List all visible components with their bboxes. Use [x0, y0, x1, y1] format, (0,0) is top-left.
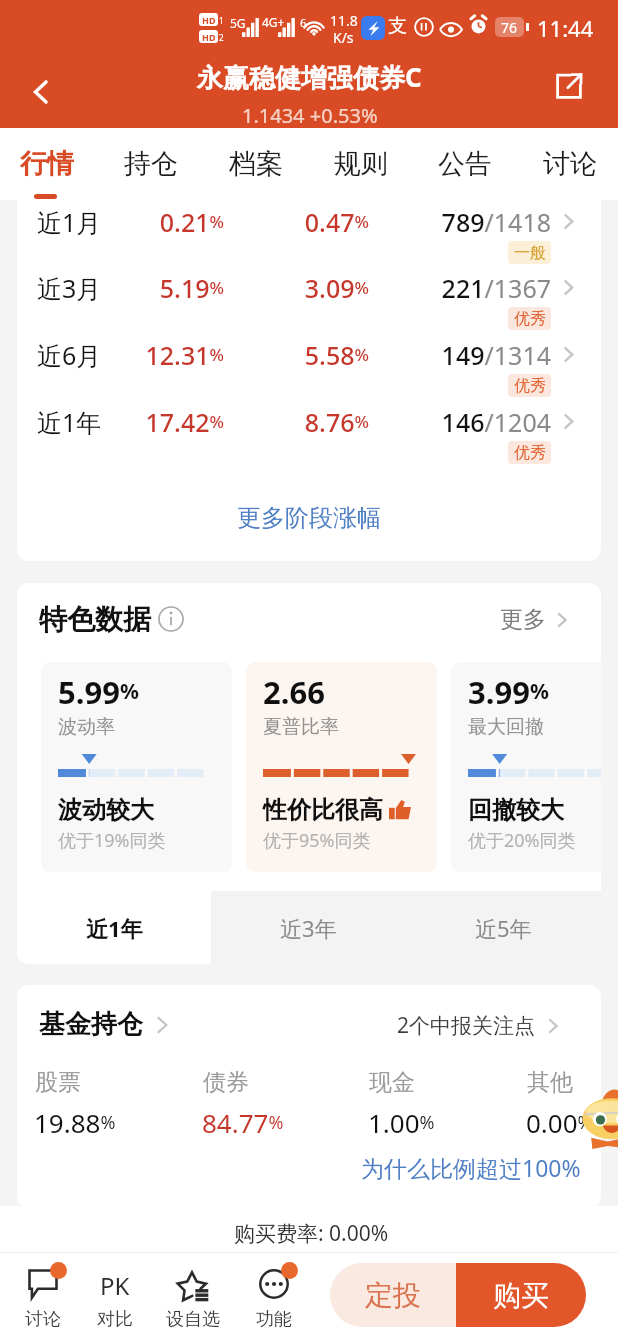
staticText: 行情 [20, 147, 74, 181]
button[interactable]: 基金持仓 [39, 1008, 174, 1041]
button[interactable]: 更多 [500, 605, 572, 634]
staticText: 1.1434 +0.53% [242, 102, 378, 129]
button[interactable]: 购买 [456, 1263, 586, 1327]
staticText: 0.21% [104, 205, 224, 239]
staticText: 11.8 [330, 11, 358, 30]
staticText: 17.42% [104, 405, 224, 439]
button[interactable]: 5.99% [41, 662, 232, 872]
staticText: 更多 [500, 605, 546, 634]
staticText: HD [202, 31, 216, 43]
button[interactable]: 持仓 [99, 128, 203, 200]
staticText: 更多阶段涨幅 [237, 503, 381, 533]
staticText: 波动较大 [58, 795, 154, 825]
staticText: 5.99% [58, 671, 139, 713]
staticText: 讨论 [25, 1308, 61, 1331]
button[interactable]: 设自选 [155, 1253, 231, 1338]
staticText: 0.00% [526, 1105, 593, 1140]
button[interactable]: 功能 [236, 1253, 312, 1338]
staticText: 19.88% [34, 1105, 116, 1140]
staticText: 84.77% [202, 1105, 284, 1140]
button[interactable]: 规则 [309, 128, 413, 200]
button[interactable]: 3.99% [451, 662, 601, 872]
staticText: 2个中报关注点 [397, 1011, 536, 1040]
button[interactable]: 2个中报关注点 [397, 1011, 563, 1040]
staticText: 3.99% [468, 671, 549, 713]
button[interactable]: 近1月 [17, 200, 601, 255]
staticText: 优秀 [514, 309, 546, 329]
staticText: 持仓 [124, 147, 178, 181]
staticText: 近3月 [37, 271, 102, 305]
staticText: 优于19%同类 [58, 828, 166, 853]
staticText: 讨论 [543, 147, 597, 181]
staticText: 近5年 [475, 913, 532, 943]
staticText: 性价比很高 [263, 795, 383, 825]
button[interactable]: 讨论 [518, 128, 618, 200]
button[interactable]: 公告 [413, 128, 517, 200]
staticText: 221/1367 [391, 271, 551, 305]
staticText: 回撤较大 [468, 795, 564, 825]
staticText: K/s [333, 28, 354, 47]
staticText: 5.19% [104, 271, 224, 305]
button[interactable]: 近1年 [17, 389, 601, 456]
staticText: 基金持仓 [39, 1008, 143, 1041]
staticText: 为什么比例超过100% [361, 1152, 581, 1183]
staticText: 12.31% [104, 338, 224, 372]
staticText: 一般 [514, 243, 546, 263]
button[interactable]: 近5年 [406, 891, 601, 964]
button[interactable]: Share [545, 62, 593, 110]
staticText: 近1年 [86, 913, 143, 943]
staticText: 149/1314 [391, 338, 551, 372]
staticText: 债券 [203, 1068, 249, 1097]
staticText: 优秀 [514, 376, 546, 396]
staticText: 现金 [369, 1068, 415, 1097]
button[interactable]: Back [14, 65, 68, 119]
button[interactable]: PK [77, 1253, 153, 1338]
button[interactable]: 近6月 [17, 322, 601, 389]
staticText: 波动率 [58, 715, 115, 739]
button[interactable]: 讨论 [5, 1253, 81, 1338]
staticText: 0.47% [249, 205, 369, 239]
button[interactable]: 定投 [330, 1263, 456, 1327]
staticText: 76 [501, 18, 518, 37]
staticText: 档案 [229, 147, 283, 181]
button[interactable]: 近3月 [17, 255, 601, 322]
button[interactable]: 近3年 [211, 891, 406, 964]
staticText: 近1年 [37, 405, 102, 439]
button[interactable]: 档案 [204, 128, 308, 200]
button[interactable]: 2.66 [246, 662, 437, 872]
button[interactable]: 为什么比例超过100% [361, 1152, 581, 1183]
staticText: 定投 [365, 1278, 421, 1313]
staticText: 优秀 [514, 443, 546, 463]
staticText: 优于20%同类 [468, 828, 576, 853]
staticText: 夏普比率 [263, 715, 339, 739]
staticText: 1.00% [368, 1105, 435, 1140]
staticText: 8.76% [249, 405, 369, 439]
staticText: 最大回撤 [468, 715, 544, 739]
staticText: 2.66 [263, 671, 325, 713]
button[interactable]: 行情 [0, 128, 99, 200]
staticText: 永赢稳健增强债券C [197, 59, 422, 95]
staticText: 特色数据 [39, 602, 151, 637]
staticText: 5G [230, 15, 246, 31]
staticText: 公告 [438, 147, 492, 181]
staticText: 股票 [35, 1068, 81, 1097]
staticText: 功能 [256, 1308, 292, 1331]
staticText: 购买 [493, 1278, 549, 1313]
staticText: 购买费率: 0.00% [234, 1219, 389, 1248]
staticText: 支 [388, 14, 407, 38]
staticText: 近1月 [37, 205, 102, 239]
staticText: 5.58% [249, 338, 369, 372]
staticText: 近3年 [280, 913, 337, 943]
staticText: 3.09% [249, 271, 369, 305]
staticText: 11:44 [537, 13, 594, 43]
staticText: 789/1418 [391, 205, 551, 239]
staticText: 4G+ [262, 14, 285, 30]
staticText: PK [100, 1269, 130, 1299]
button[interactable]: 近1年 [17, 891, 211, 964]
button[interactable]: 更多阶段涨幅 [17, 456, 601, 561]
staticText: 1 [219, 15, 224, 26]
staticText: 近6月 [37, 338, 102, 372]
staticText: 对比 [97, 1308, 133, 1331]
staticText: 2 [219, 32, 224, 43]
staticText: 6 [300, 15, 307, 30]
